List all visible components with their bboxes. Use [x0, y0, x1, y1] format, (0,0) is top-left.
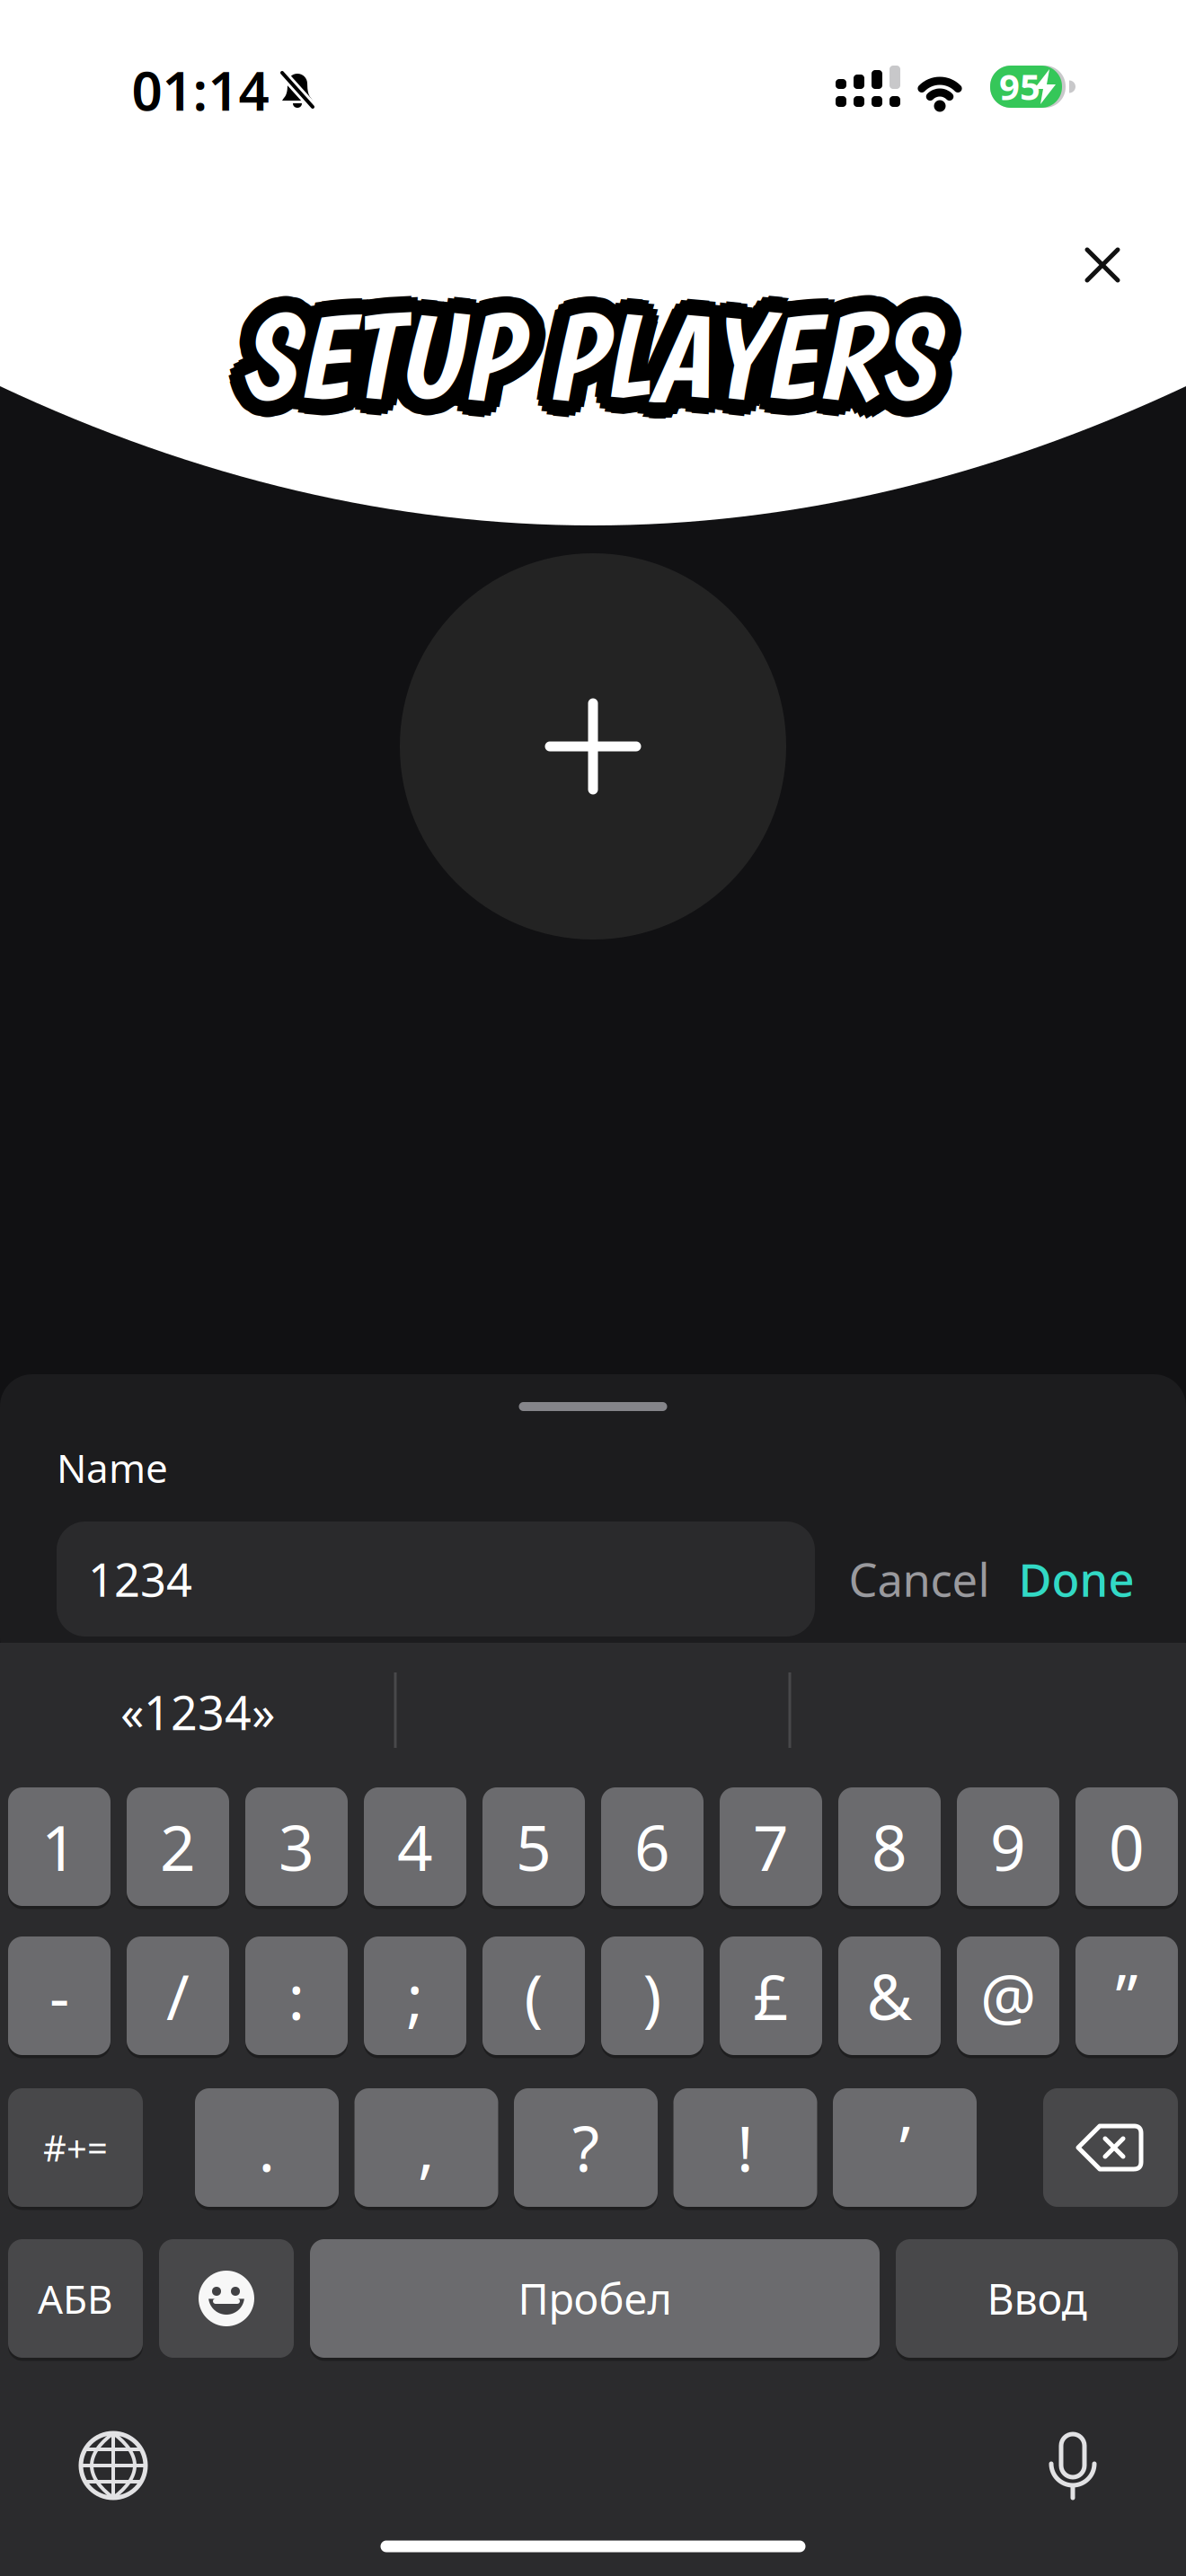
- button[interactable]: 3: [245, 1787, 348, 1906]
- staticText: SETUP PLAYERS: [250, 296, 946, 438]
- staticText: 4: [397, 1805, 433, 1888]
- staticText: SETUP PLAYERS: [245, 270, 941, 412]
- staticText: 1234: [88, 1549, 192, 1609]
- button[interactable]: ): [601, 1936, 704, 2055]
- button[interactable]: АБВ: [8, 2239, 143, 2358]
- staticText: SETUP PLAYERS: [227, 296, 923, 438]
- button[interactable]: ”: [1075, 1936, 1178, 2055]
- button[interactable]: Ввод: [896, 2239, 1178, 2358]
- button[interactable]: ,: [354, 2088, 498, 2207]
- button[interactable]: 6: [601, 1787, 704, 1906]
- staticText: /: [166, 1954, 190, 2037]
- button[interactable]: &: [838, 1936, 941, 2055]
- button[interactable]: Next keyboard: [77, 2430, 149, 2501]
- staticText: SETUP PLAYERS: [253, 291, 950, 433]
- button[interactable]: ’: [833, 2088, 977, 2207]
- button[interactable]: 1: [8, 1787, 111, 1906]
- staticText: ,: [418, 2106, 435, 2189]
- staticText: «1234»: [120, 1681, 275, 1743]
- staticText: :: [288, 1954, 305, 2037]
- staticText: SETUP PLAYERS: [224, 291, 920, 433]
- button[interactable]: «1234»: [27, 1669, 368, 1755]
- staticText: &: [867, 1954, 912, 2037]
- staticText: SETUP PLAYERS: [239, 284, 935, 427]
- button[interactable]: 8: [838, 1787, 941, 1906]
- staticText: 8: [872, 1805, 907, 1888]
- staticText: (: [524, 1954, 543, 2037]
- staticText: 6: [634, 1805, 670, 1888]
- button[interactable]: Пробел: [310, 2239, 880, 2358]
- staticText: SETUP PLAYERS: [232, 299, 929, 442]
- button[interactable]: !: [673, 2088, 817, 2207]
- button[interactable]: (: [482, 1936, 585, 2055]
- staticText: SETUP PLAYERS: [250, 273, 946, 415]
- staticText: 5: [516, 1805, 552, 1888]
- button[interactable]: ;: [364, 1936, 466, 2055]
- staticText: SETUP PLAYERS: [239, 268, 935, 411]
- staticText: Done: [1018, 1549, 1134, 1609]
- staticText: SETUP PLAYERS: [224, 278, 920, 421]
- button[interactable]: :: [245, 1936, 348, 2055]
- staticText: SETUP PLAYERS: [232, 270, 929, 412]
- button[interactable]: Dictate: [1037, 2430, 1109, 2501]
- staticText: ”: [1115, 1954, 1138, 2037]
- staticText: 95: [999, 62, 1040, 110]
- button[interactable]: Emoji: [159, 2239, 294, 2358]
- staticText: -: [49, 1954, 69, 2037]
- staticText: 1: [41, 1805, 77, 1888]
- staticText: 3: [279, 1805, 314, 1888]
- button[interactable]: 5: [482, 1787, 585, 1906]
- button[interactable]: Cancel: [849, 1549, 990, 1609]
- staticText: 9: [990, 1805, 1026, 1888]
- staticText: 01:14: [132, 54, 269, 126]
- staticText: Cancel: [849, 1549, 990, 1609]
- staticText: Ввод: [987, 2271, 1087, 2326]
- staticText: .: [258, 2106, 275, 2189]
- staticText: #+=: [43, 2124, 108, 2171]
- staticText: SETUP PLAYERS: [227, 273, 923, 415]
- button[interactable]: 0: [1075, 1787, 1178, 1906]
- staticText: SETUP PLAYERS: [253, 278, 950, 421]
- staticText: 0: [1109, 1805, 1145, 1888]
- button[interactable]: @: [957, 1936, 1059, 2055]
- staticText: Name: [57, 1441, 168, 1494]
- button[interactable]: Close: [1084, 246, 1121, 284]
- staticText: 7: [753, 1805, 789, 1888]
- staticText: !: [737, 2106, 754, 2189]
- button[interactable]: ?: [514, 2088, 658, 2207]
- button[interactable]: Done: [1018, 1549, 1134, 1609]
- button[interactable]: #+=: [8, 2088, 143, 2207]
- button[interactable]: 7: [720, 1787, 822, 1906]
- button[interactable]: 2: [127, 1787, 229, 1906]
- staticText: SETUP PLAYERS: [255, 284, 951, 427]
- staticText: ): [643, 1954, 662, 2037]
- button[interactable]: Delete: [1043, 2088, 1178, 2207]
- button[interactable]: 4: [364, 1787, 466, 1906]
- button[interactable]: £: [720, 1936, 822, 2055]
- staticText: SETUP PLAYERS: [222, 284, 919, 427]
- staticText: SETUP PLAYERS: [245, 299, 941, 442]
- staticText: ?: [572, 2106, 599, 2189]
- staticText: ;: [407, 1954, 424, 2037]
- button[interactable]: -: [8, 1936, 111, 2055]
- staticText: Пробел: [518, 2271, 672, 2326]
- staticText: ’: [899, 2106, 910, 2189]
- staticText: АБВ: [38, 2272, 113, 2325]
- button[interactable]: /: [127, 1936, 229, 2055]
- staticText: SETUP PLAYERS: [239, 301, 935, 443]
- staticText: £: [753, 1954, 789, 2037]
- button[interactable]: 9: [957, 1787, 1059, 1906]
- button[interactable]: Add player: [400, 553, 786, 940]
- button[interactable]: .: [195, 2088, 339, 2207]
- staticText: 2: [160, 1805, 196, 1888]
- staticText: @: [980, 1954, 1036, 2037]
